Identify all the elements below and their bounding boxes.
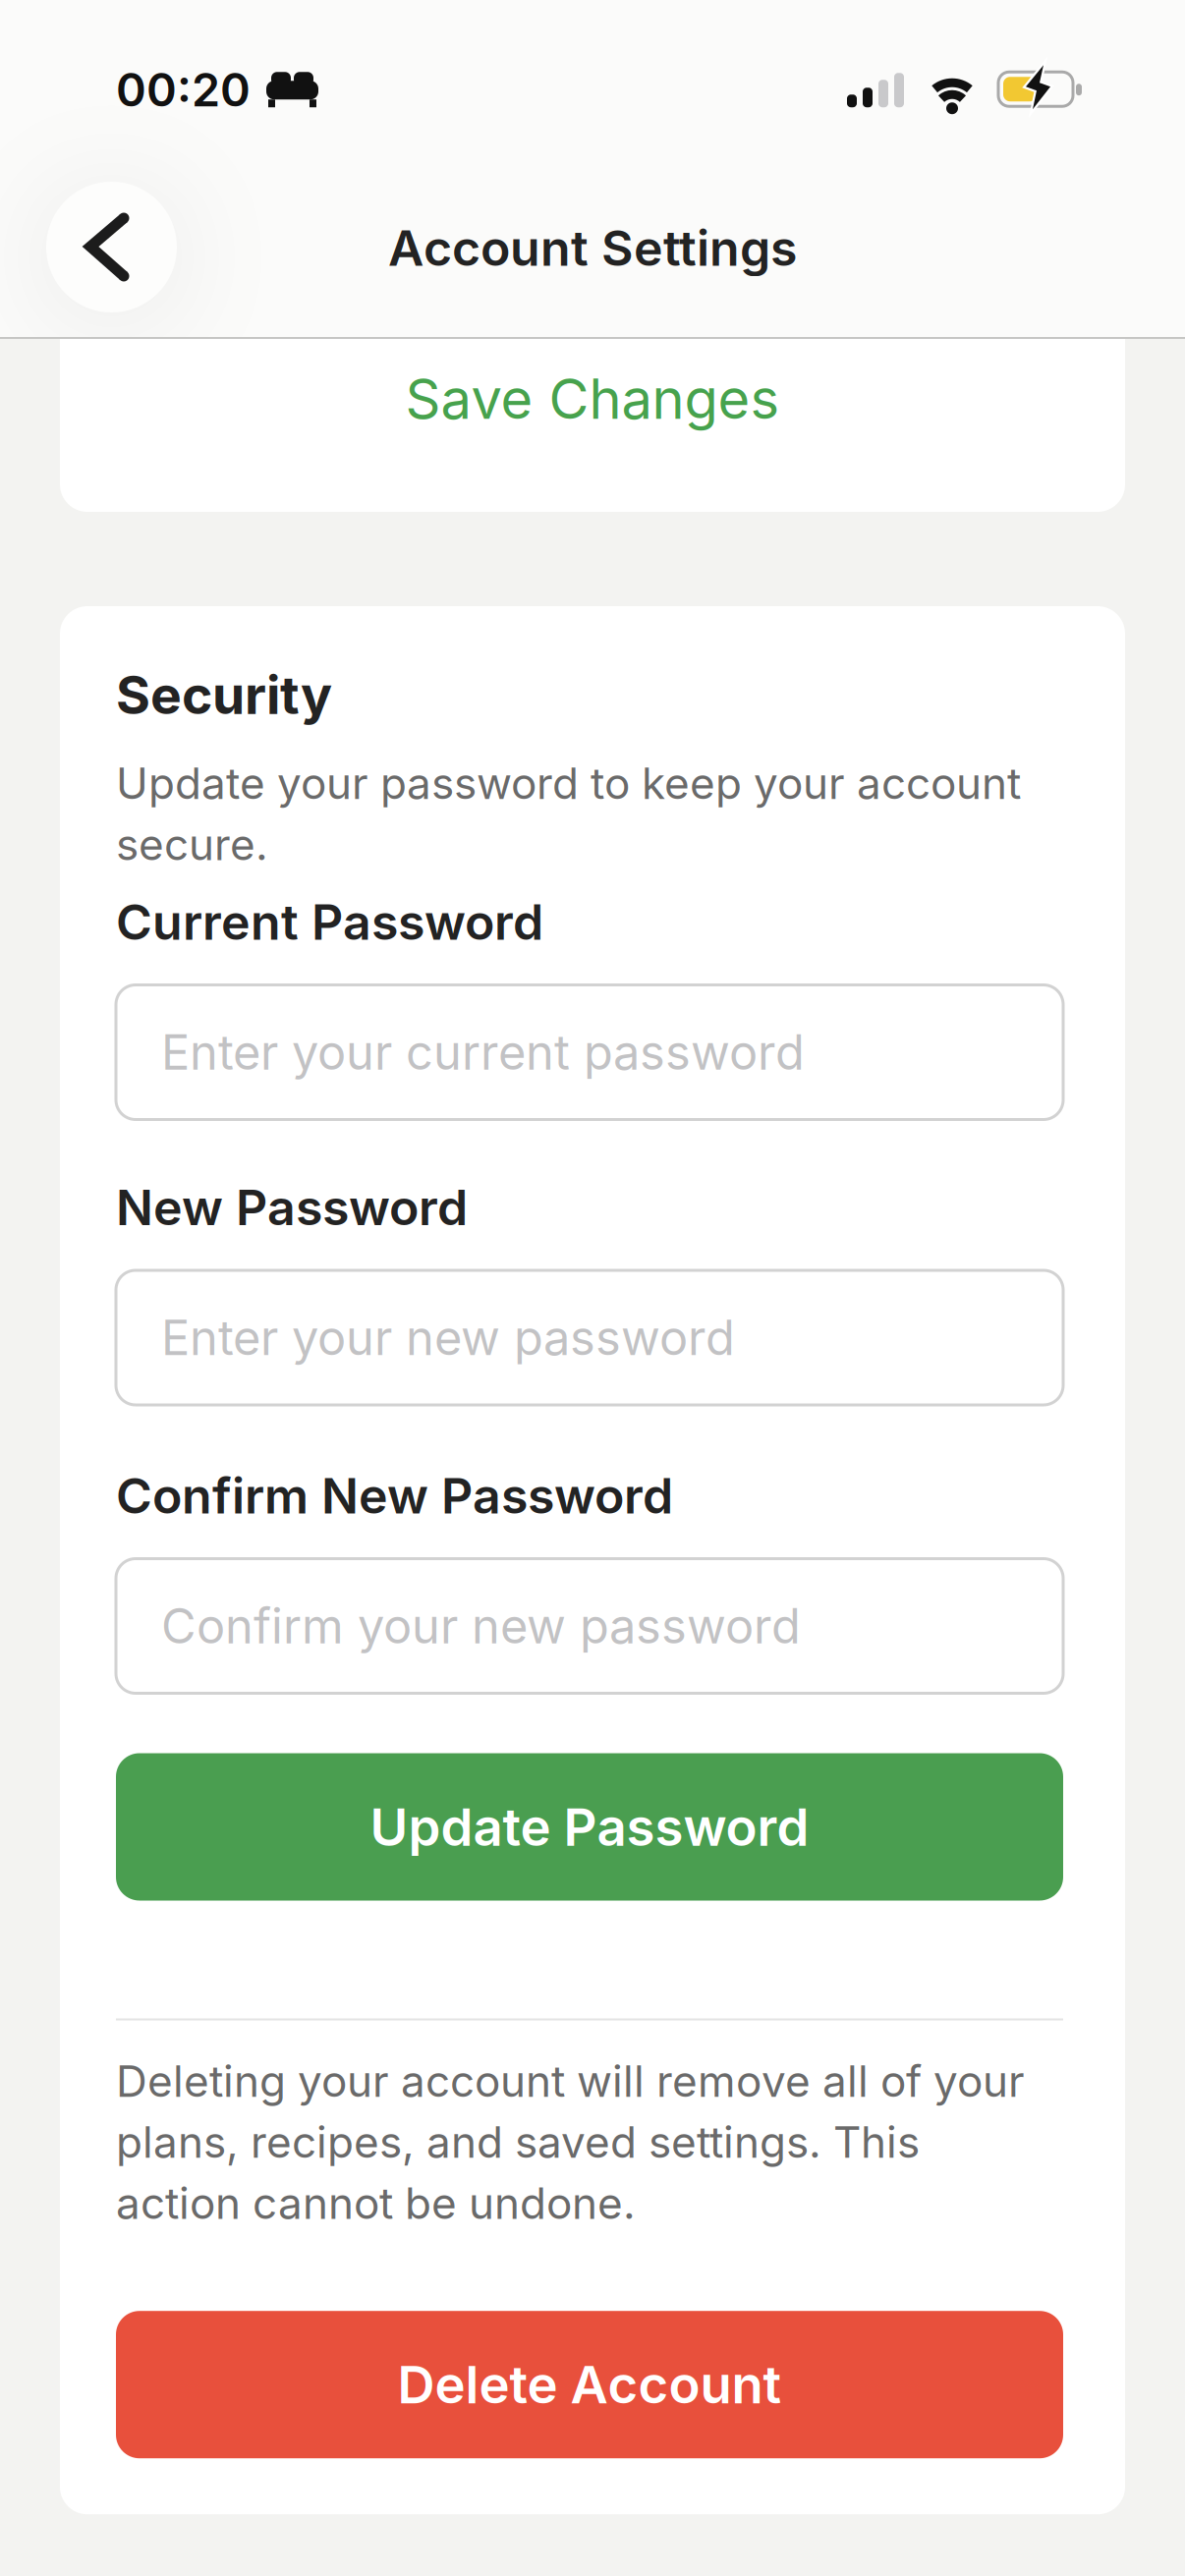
staticText: Confirm your new password xyxy=(161,1597,801,1655)
staticText: Delete Account xyxy=(397,2353,782,2416)
staticText: New Password xyxy=(116,1177,468,1237)
staticText: Update Password xyxy=(370,1796,809,1858)
staticText: Account Settings xyxy=(388,218,797,278)
staticText: Enter your new password xyxy=(161,1309,735,1367)
staticText: 00:20 xyxy=(116,62,251,117)
button[interactable]: Delete Account xyxy=(116,2311,1063,2458)
button[interactable]: Save Changes xyxy=(60,365,1125,432)
staticText: Update your password to keep your accoun… xyxy=(116,757,1021,870)
staticText: Security xyxy=(116,663,332,727)
staticText: Enter your current password xyxy=(161,1023,805,1081)
staticText: Deleting your account will remove all of… xyxy=(116,2055,1025,2229)
staticText: Confirm New Password xyxy=(116,1466,673,1525)
button[interactable]: Update Password xyxy=(116,1753,1063,1901)
staticText: Current Password xyxy=(116,892,543,952)
button[interactable]: Back xyxy=(46,182,177,312)
staticText: Save Changes xyxy=(405,366,780,432)
